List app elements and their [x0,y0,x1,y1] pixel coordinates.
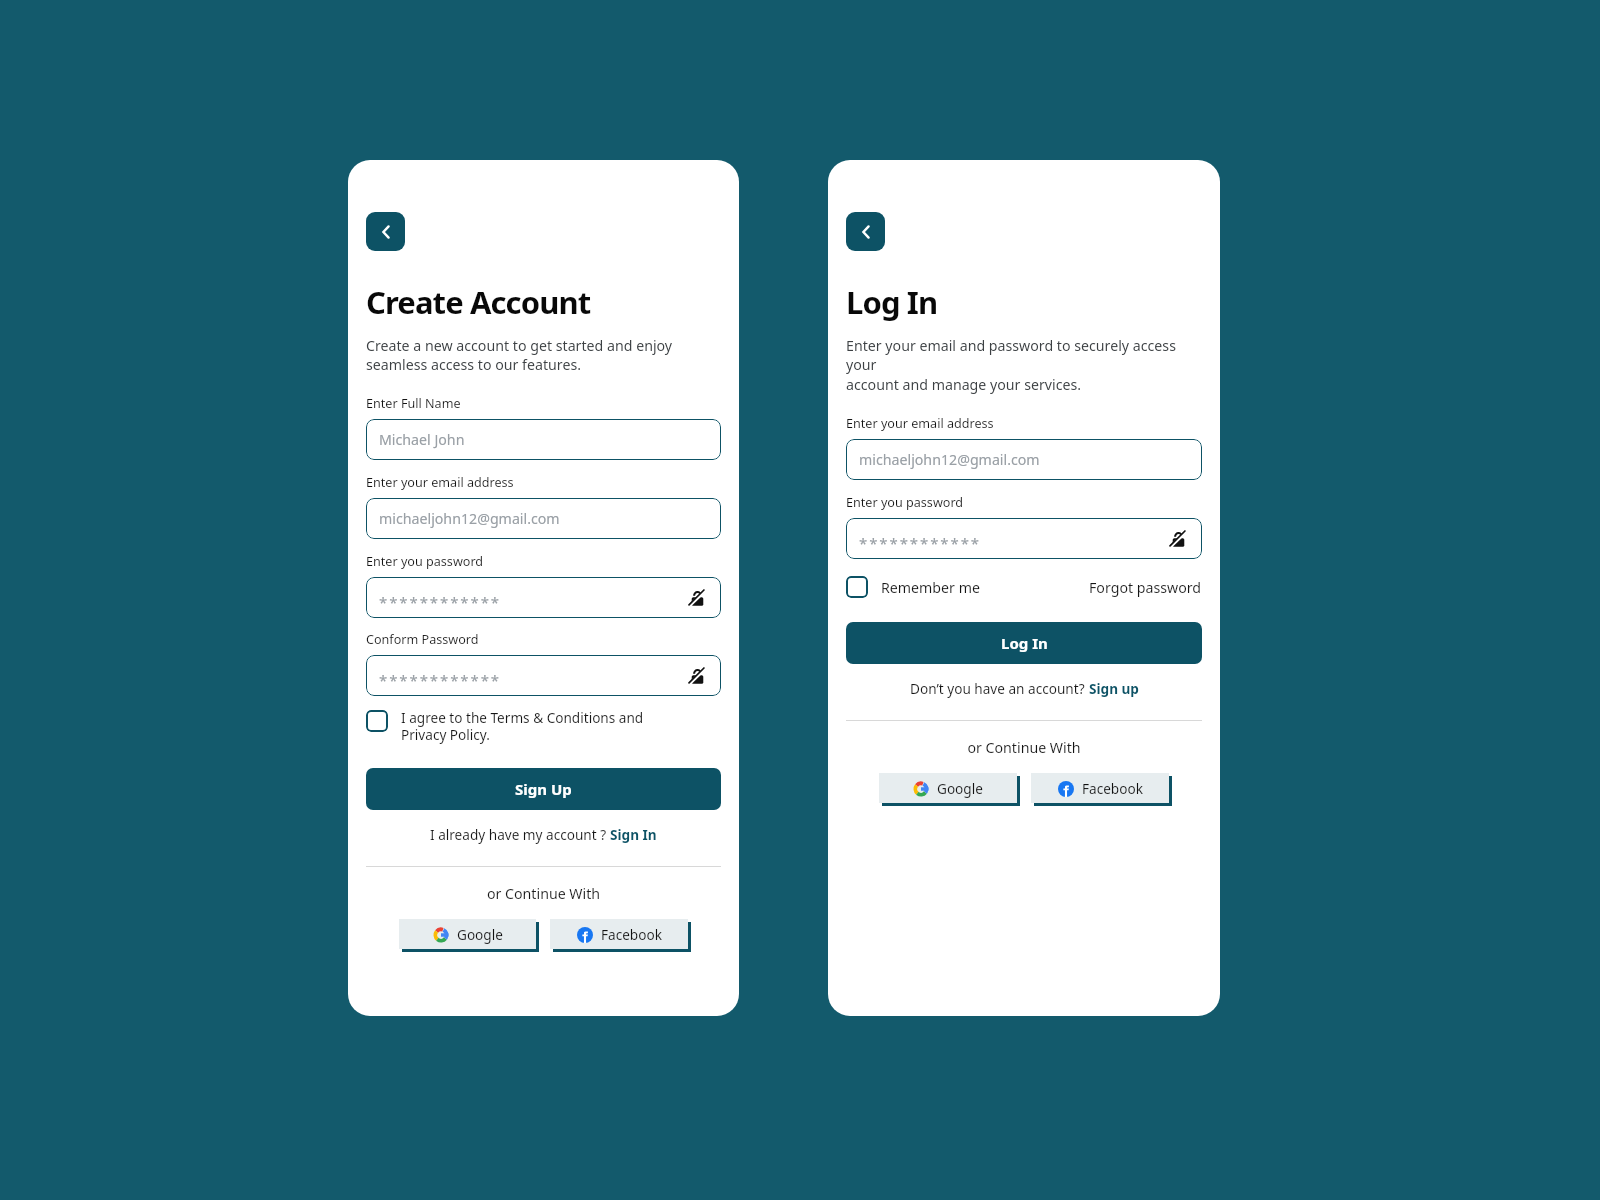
staticText: Enter your email and password to securel… [846,336,1202,394]
button[interactable]: Toggle password visibility [1167,528,1189,550]
button[interactable]: Checkbox [846,576,980,598]
staticText: Facebook [1082,779,1143,798]
button[interactable]: * * * * * * * * * * * * [366,577,721,618]
button[interactable]: Sign Up [366,768,721,810]
button[interactable]: Google [879,773,1017,803]
staticText: Enter Full Name [366,395,461,412]
button[interactable]: Forgot password [1089,578,1202,597]
staticText: Don’t you have an account? [910,679,1089,698]
staticText: * * * * * * * * * * * * [859,533,979,553]
button[interactable]: Google [399,919,536,949]
button[interactable]: Facebook [1031,773,1169,803]
staticText: * * * * * * * * * * * * [379,592,499,612]
staticText: Enter your email address [366,474,514,491]
staticText: Michael John [379,430,465,449]
staticText: Conform Password [366,631,479,648]
staticText: Log In [846,281,938,323]
button[interactable]: michaeljohn12@gmail.com [366,498,721,539]
staticText: Remember me [881,578,980,597]
staticText: Enter your email address [846,415,994,432]
button[interactable]: Back [366,212,405,251]
staticText: Log In [1001,633,1048,653]
button[interactable]: * * * * * * * * * * * * [366,655,721,696]
button[interactable]: Checkbox [846,576,868,598]
button[interactable]: Back [846,212,885,251]
staticText: Facebook [601,925,662,944]
button[interactable]: Sign up [1089,679,1139,698]
staticText: * * * * * * * * * * * * [379,670,499,690]
staticText: I agree to the Terms & Conditions and Pr… [401,708,644,744]
staticText: or Continue With [846,738,1202,757]
staticText: Google [457,925,503,944]
button[interactable]: * * * * * * * * * * * * [846,518,1202,559]
staticText: michaeljohn12@gmail.com [379,509,560,528]
button[interactable]: Log In [846,622,1202,664]
button[interactable]: Checkbox [366,710,721,746]
button[interactable]: michaeljohn12@gmail.com [846,439,1202,480]
staticText: Google [937,779,983,798]
button[interactable]: Checkbox [366,710,388,732]
button[interactable]: Toggle password visibility [686,587,708,609]
staticText: Enter you password [846,494,964,511]
button[interactable]: Facebook [550,919,688,949]
staticText: Enter you password [366,553,484,570]
button[interactable]: Michael John [366,419,721,460]
staticText: or Continue With [366,884,721,903]
staticText: Create Account [366,281,591,323]
staticText: michaeljohn12@gmail.com [859,450,1040,469]
button[interactable]: Sign In [610,825,657,844]
staticText: Sign Up [515,779,572,799]
staticText: I already have my account ? [430,825,610,844]
staticText: Create a new account to get started and … [366,336,673,374]
button[interactable]: Toggle password visibility [686,665,708,687]
